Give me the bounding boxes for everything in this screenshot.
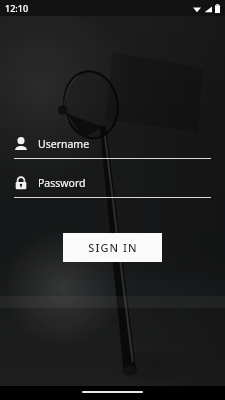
staticText: Username — [38, 137, 90, 151]
other: Password — [14, 175, 28, 191]
button[interactable]: SIGN IN — [63, 233, 162, 262]
staticText: Password — [38, 176, 86, 190]
other: Username — [14, 136, 28, 152]
button[interactable]: Home — [82, 391, 143, 393]
staticText: SIGN IN — [88, 240, 138, 255]
staticText: 12:10 — [5, 2, 29, 14]
button[interactable]: Password — [14, 172, 211, 198]
button[interactable]: Username — [14, 133, 211, 159]
